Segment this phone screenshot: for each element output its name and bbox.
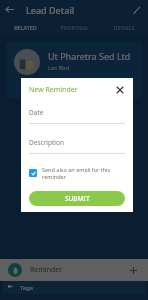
staticText: DETAILS	[113, 24, 135, 31]
button[interactable]: Ut Pharetra Sed Ltd	[6, 42, 142, 98]
button[interactable]: Edit	[127, 0, 146, 19]
button[interactable]: RELATED	[0, 19, 50, 36]
button[interactable]: Send also an email for this reminder	[29, 166, 125, 180]
button[interactable]: PROPOSAL	[50, 19, 99, 36]
button[interactable]: DETAILS	[99, 19, 148, 36]
staticText: Date	[29, 108, 44, 117]
staticText: Tags	[20, 284, 33, 292]
staticText: Leo Bird	[48, 64, 70, 71]
button[interactable]: Back	[0, 0, 19, 19]
staticText: Reminder	[30, 265, 63, 275]
button[interactable]: Reminder	[0, 259, 148, 281]
staticText: New Reminder	[29, 85, 78, 95]
button[interactable]: Tags	[3, 281, 145, 294]
button[interactable]: Close	[114, 84, 125, 95]
staticText: Ut Pharetra Sed Ltd	[48, 50, 131, 62]
staticText: Description	[29, 138, 64, 147]
staticText: PROPOSAL	[60, 24, 89, 31]
staticText: Lead Detail	[26, 4, 75, 16]
button[interactable]: SUBMIT	[29, 191, 125, 206]
staticText: SUBMIT	[65, 194, 90, 203]
staticText: Send also an email for this reminder	[42, 166, 125, 180]
button[interactable]: Add reminder	[126, 263, 140, 277]
staticText: RELATED	[14, 24, 37, 31]
